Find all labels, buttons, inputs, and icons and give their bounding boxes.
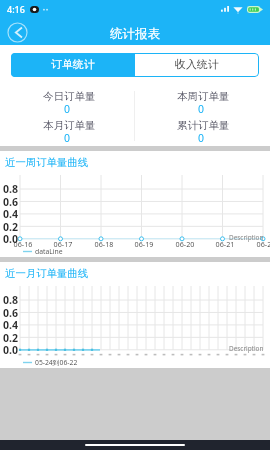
staticText: 0.6 xyxy=(0,306,18,320)
staticText: 今日订单量 xyxy=(43,90,96,103)
staticText: 06-18 xyxy=(92,239,116,249)
staticText: 06-16 xyxy=(11,239,35,249)
staticText: 06-19 xyxy=(132,239,156,249)
staticText: 近一月订单量曲线 xyxy=(5,267,89,280)
staticText: 本周订单量 xyxy=(177,90,230,103)
staticText: 0.8 xyxy=(0,182,18,196)
staticText: 0.4 xyxy=(0,207,18,221)
staticText: 0.2 xyxy=(0,331,18,345)
staticText: Description xyxy=(229,344,264,353)
button[interactable]: 订单统计 xyxy=(11,53,135,77)
button[interactable]: 本月订单量 xyxy=(2,119,137,147)
button[interactable]: 累计订单量 xyxy=(136,119,270,147)
button[interactable]: 今日订单量 xyxy=(2,90,137,118)
staticText: 0.2 xyxy=(0,220,18,234)
staticText: 近一周订单量曲线 xyxy=(5,156,89,169)
staticText: 0.8 xyxy=(0,293,18,307)
staticText: 0.0 xyxy=(0,343,18,357)
staticText: 累计订单量 xyxy=(177,119,230,132)
staticText: 06-17 xyxy=(51,239,75,249)
staticText: 0.6 xyxy=(0,195,18,209)
staticText: 收入统计 xyxy=(175,58,219,72)
staticText: 05-24到06-22 xyxy=(35,358,78,367)
staticText: 0 xyxy=(64,131,71,145)
button[interactable]: Back xyxy=(6,21,29,44)
staticText: 0.0 xyxy=(0,232,18,246)
staticText: 06-21 xyxy=(213,239,237,249)
button[interactable]: 本周订单量 xyxy=(136,90,270,118)
staticText: 06-20 xyxy=(173,239,197,249)
staticText: dataLine xyxy=(35,247,63,256)
staticText: 4:16 xyxy=(7,3,25,15)
staticText: 06-22 xyxy=(254,239,270,249)
staticText: 统计报表 xyxy=(110,26,160,42)
staticText: 订单统计 xyxy=(51,58,95,72)
button[interactable]: 收入统计 xyxy=(135,53,259,77)
staticText: 0 xyxy=(64,102,71,116)
staticText: 0 xyxy=(198,102,205,116)
staticText: Description xyxy=(229,233,264,242)
staticText: 本月订单量 xyxy=(43,119,96,132)
staticText: 0 xyxy=(198,131,205,145)
staticText: 0.4 xyxy=(0,318,18,332)
